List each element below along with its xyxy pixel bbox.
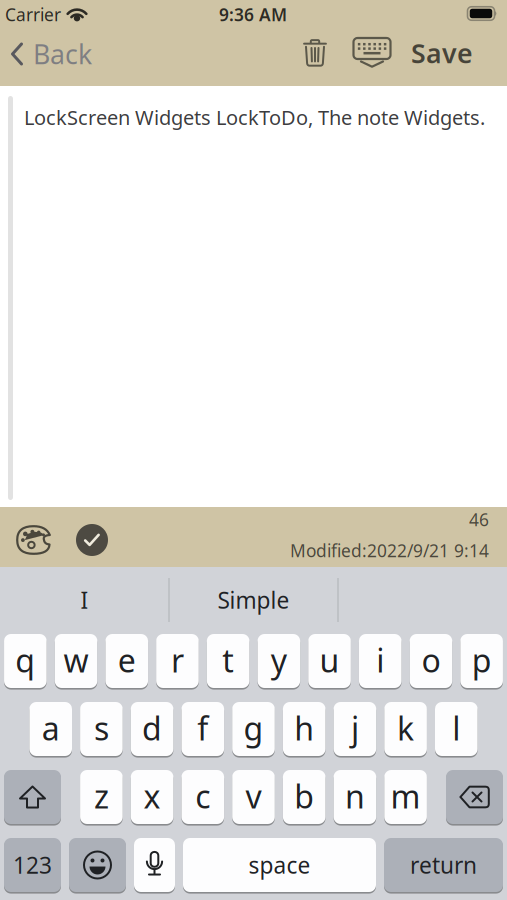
staticText: l [452, 707, 460, 749]
button[interactable]: o [410, 634, 452, 688]
button[interactable]: Delete note [295, 33, 335, 73]
button[interactable]: k [384, 702, 427, 756]
button[interactable]: h [283, 702, 325, 756]
button[interactable]: c [181, 770, 224, 824]
button[interactable]: return [384, 838, 503, 892]
button[interactable]: Done [72, 520, 112, 560]
staticText: space [248, 850, 310, 880]
staticText: m [391, 775, 421, 817]
button[interactable]: Emoji [69, 838, 126, 892]
button[interactable]: g [232, 702, 275, 756]
button[interactable]: e [105, 634, 148, 688]
button[interactable]: f [181, 702, 224, 756]
button[interactable]: i [359, 634, 402, 688]
button[interactable]: t [207, 634, 249, 688]
staticText: s [94, 707, 109, 749]
staticText: 9:36 AM [219, 3, 287, 26]
staticText: d [142, 707, 162, 749]
staticText: z [94, 775, 109, 817]
staticText: o [421, 639, 440, 681]
staticText: h [294, 707, 314, 749]
staticText: q [15, 639, 35, 681]
button[interactable]: q [4, 634, 47, 688]
button[interactable]: Delete [446, 770, 503, 824]
button[interactable]: y [258, 634, 300, 688]
button[interactable]: w [55, 634, 97, 688]
button[interactable]: Shift [4, 770, 61, 824]
button[interactable]: Theme [12, 520, 56, 560]
button[interactable]: n [334, 770, 376, 824]
staticText: Modified:2022/9/21 9:14 [290, 539, 489, 562]
button[interactable]: Back [10, 36, 92, 72]
button[interactable]: Dismiss keyboard [348, 33, 396, 73]
button[interactable]: z [80, 770, 123, 824]
staticText: j [351, 707, 359, 749]
staticText: x [144, 775, 161, 817]
staticText: Save [411, 35, 473, 71]
staticText: I [80, 585, 88, 615]
button[interactable]: a [29, 702, 72, 756]
button[interactable]: b [283, 770, 325, 824]
button[interactable]: d [131, 702, 173, 756]
staticText: b [294, 775, 314, 817]
staticText: return [410, 850, 477, 880]
button[interactable]: Dictate [134, 838, 175, 892]
staticText: r [171, 639, 184, 681]
staticText: c [195, 775, 210, 817]
staticText: v [245, 775, 261, 817]
staticText: a [42, 707, 60, 749]
button[interactable]: x [131, 770, 173, 824]
staticText: p [472, 639, 492, 681]
staticText: f [197, 707, 208, 749]
staticText: u [320, 639, 340, 681]
staticText: w [64, 639, 89, 681]
button[interactable]: v [232, 770, 275, 824]
staticText: e [118, 639, 136, 681]
button[interactable]: Save [411, 35, 473, 71]
staticText: g [243, 707, 263, 749]
staticText: 46 [469, 508, 489, 531]
staticText: Simple [217, 585, 289, 615]
staticText: LockScreen Widgets LockToDo, The note Wi… [24, 104, 485, 131]
button[interactable]: p [460, 634, 503, 688]
button[interactable]: I [9, 575, 159, 625]
button[interactable]: r [156, 634, 199, 688]
staticText: 123 [13, 850, 52, 880]
staticText: Back [33, 36, 92, 72]
button[interactable]: Numbers [4, 838, 61, 892]
button[interactable]: space [183, 838, 376, 892]
staticText: Carrier [5, 3, 61, 26]
staticText: k [397, 707, 414, 749]
staticText: i [376, 639, 384, 681]
button[interactable]: m [384, 770, 427, 824]
button[interactable]: j [334, 702, 376, 756]
button[interactable]: l [435, 702, 478, 756]
button[interactable]: u [308, 634, 351, 688]
button[interactable]: Simple [178, 575, 328, 625]
staticText: t [222, 639, 234, 681]
staticText: y [271, 639, 287, 681]
staticText: n [345, 775, 365, 817]
button[interactable]: s [80, 702, 123, 756]
